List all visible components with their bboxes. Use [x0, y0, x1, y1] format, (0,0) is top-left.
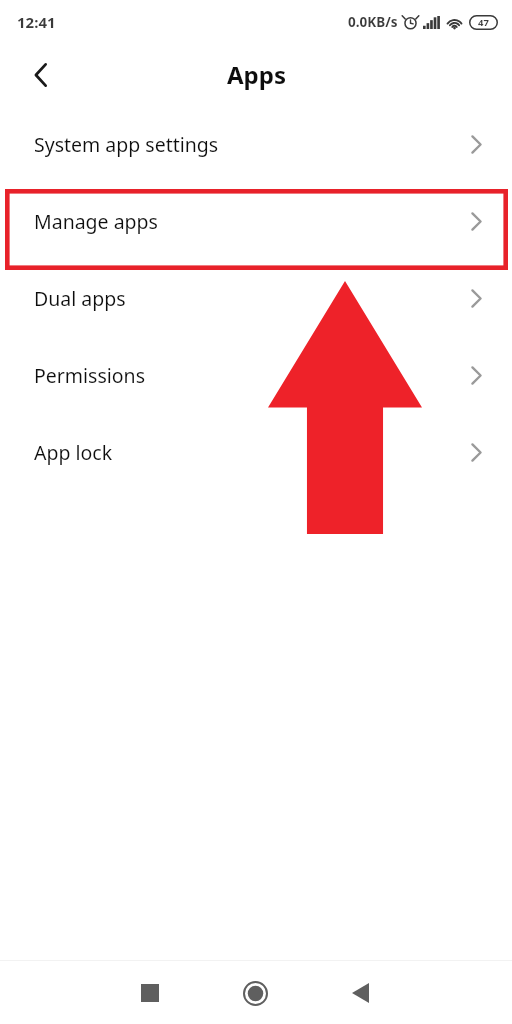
staticText: 47 — [478, 16, 489, 29]
button[interactable]: Permissions — [0, 337, 512, 414]
staticText: System app settings — [34, 131, 219, 158]
staticText: 0.0KB/s — [348, 13, 398, 31]
button[interactable]: Home — [229, 967, 281, 1019]
staticText: Dual apps — [34, 285, 126, 312]
button[interactable]: System app settings — [0, 106, 512, 183]
button[interactable]: Dual apps — [0, 260, 512, 337]
button[interactable]: App lock — [0, 414, 512, 491]
staticText: Manage apps — [34, 208, 158, 235]
button[interactable]: Recent apps — [124, 967, 176, 1019]
staticText: Apps — [227, 58, 286, 91]
button[interactable]: Back — [334, 967, 386, 1019]
staticText: Permissions — [34, 362, 146, 389]
button[interactable]: Manage apps — [0, 183, 512, 260]
button[interactable]: Back — [18, 53, 62, 97]
staticText: 12:41 — [17, 12, 56, 32]
staticText: App lock — [34, 439, 113, 466]
